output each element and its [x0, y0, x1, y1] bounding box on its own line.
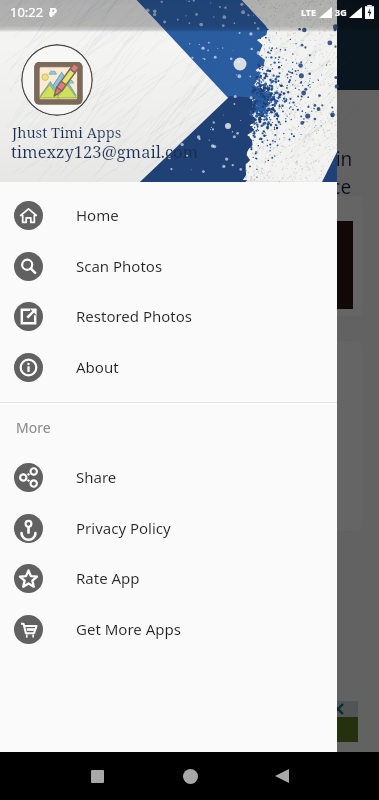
staticText: LTE — [301, 6, 317, 18]
button[interactable]: Recents — [74, 753, 120, 799]
staticText: ₽ — [49, 3, 57, 21]
staticText: Scan Photos — [76, 256, 163, 276]
staticText: About — [76, 357, 119, 377]
staticText: Share — [76, 467, 117, 487]
staticText: More — [16, 418, 51, 437]
staticText: Get More Apps — [76, 619, 181, 639]
button[interactable]: Home — [167, 753, 213, 799]
staticText: Restore all old and damaged photos in — [8, 146, 353, 172]
button[interactable]: About — [0, 342, 337, 392]
staticText: timexzy123@gmail.com — [11, 140, 199, 162]
button[interactable]: Scan Photos — [0, 241, 337, 291]
staticText: Home — [76, 205, 119, 225]
staticText: Restored Photos — [76, 306, 193, 326]
button[interactable]: Get More Apps — [0, 604, 337, 654]
button[interactable]: Restored Photos — [0, 291, 337, 341]
button[interactable]: Home — [0, 190, 337, 240]
staticText: Rate App — [76, 568, 140, 588]
button[interactable]: Back — [259, 753, 305, 799]
staticText: Jhust Timi Apps — [12, 122, 122, 142]
staticText: 3G — [335, 6, 347, 18]
button[interactable]: Share — [0, 452, 337, 502]
staticText: one tap, then save or share them once — [8, 174, 352, 200]
button[interactable]: Rate App — [0, 553, 337, 603]
button[interactable]: Privacy Policy — [0, 503, 337, 553]
staticText: Privacy Policy — [76, 518, 171, 538]
staticText: 10:22 — [10, 3, 44, 21]
